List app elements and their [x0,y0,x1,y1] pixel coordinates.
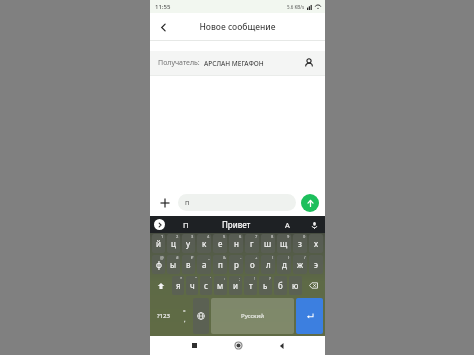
staticText: 5.6 KB/s [287,4,305,10]
staticText: з [298,238,302,249]
staticText: и [233,280,238,291]
staticText: м [217,280,224,291]
staticText: + [255,255,258,260]
button[interactable]: ш [261,234,275,253]
staticText: у [186,238,191,249]
button[interactable]: п [178,194,296,211]
button[interactable]: ы [167,255,180,274]
staticText: 9 [287,234,290,239]
staticText: А [285,220,290,230]
button[interactable]: м [214,276,227,295]
staticText: " [195,276,197,281]
button[interactable]: ?123 [152,298,175,334]
staticText: ?123 [157,312,170,320]
button[interactable]: е [213,234,227,253]
button[interactable]: о [245,255,259,274]
button[interactable]: Send [301,194,319,212]
staticText: я [176,280,181,291]
staticText: , [184,316,186,324]
button[interactable]: з [293,234,307,253]
button[interactable]: Add attachment [156,194,174,212]
staticText: ю [292,280,299,291]
staticText: 2 [176,234,179,239]
staticText: п [185,198,190,208]
staticText: ш [264,238,272,249]
button[interactable]: Shift [152,276,170,295]
staticText: _ [208,255,210,260]
button[interactable]: ю [289,276,302,295]
button[interactable]: с [200,276,212,295]
button[interactable]: б [274,276,287,295]
button[interactable]: х [309,234,323,253]
staticText: ! [254,276,256,281]
button[interactable]: Home [227,336,249,355]
button[interactable]: и [229,276,242,295]
button[interactable]: у [182,234,195,253]
button[interactable]: н [229,234,243,253]
button[interactable]: ц [167,234,180,253]
staticText: 7 [255,234,258,239]
button[interactable]: ч [186,276,198,295]
staticText: в [186,259,191,270]
staticText: л [266,259,271,270]
button[interactable]: р [229,255,243,274]
button[interactable]: к [197,234,211,253]
staticText: : [224,276,226,281]
staticText: ₽ [191,255,194,260]
button[interactable]: э [309,255,323,274]
staticText: щ [280,238,288,249]
button[interactable]: я [172,276,184,295]
staticText: 4 [207,234,210,239]
staticText: о [250,259,255,270]
button[interactable]: а [197,255,211,274]
button[interactable]: ь [259,276,272,295]
button[interactable]: Русский [211,298,294,334]
staticText: г [250,238,254,249]
button[interactable]: п [213,255,227,274]
staticText: н [234,238,239,249]
staticText: 8 [271,234,274,239]
button[interactable]: ф [152,255,165,274]
button[interactable]: в [182,255,195,274]
button[interactable]: Привет [207,216,266,233]
staticText: П [183,220,189,230]
staticText: б [278,280,283,291]
staticText: х [314,238,319,249]
button[interactable]: Back [271,336,293,355]
staticText: 5 [223,234,226,239]
button[interactable]: л [261,255,275,274]
button[interactable]: й [152,234,165,253]
button[interactable]: г [245,234,259,253]
button[interactable]: т [244,276,257,295]
staticText: АРСЛАН МЕГАФОН [204,59,264,68]
staticText: Новое сообщение [199,21,276,33]
button[interactable]: ж [293,255,307,274]
staticText: р [234,259,239,270]
button[interactable]: Получатель: [150,51,325,75]
button[interactable]: А [266,216,308,233]
staticText: ; [239,276,241,281]
staticText: Привет [222,219,251,230]
button[interactable]: ° [177,298,191,334]
button[interactable]: Voice input [308,219,320,231]
button[interactable]: д [277,255,291,274]
button[interactable]: Choose contact [301,55,317,71]
button[interactable]: П [165,216,207,233]
button[interactable]: Backspace [304,276,323,295]
button[interactable]: Expand toolbar [154,219,165,230]
staticText: п [218,259,223,270]
staticText: ( [272,255,274,260]
button[interactable]: Change language [193,298,209,334]
staticText: ° [183,308,186,316]
staticText: & [223,255,226,260]
staticText: с [204,280,208,291]
staticText: / [304,255,306,260]
staticText: т [249,280,253,291]
button[interactable]: Recents [183,336,205,355]
staticText: ? [269,276,271,281]
staticText: @ [160,255,164,260]
button[interactable]: щ [277,234,291,253]
staticText: 1 [161,234,164,239]
button[interactable]: Enter [296,298,323,334]
button[interactable]: Back [154,18,172,36]
